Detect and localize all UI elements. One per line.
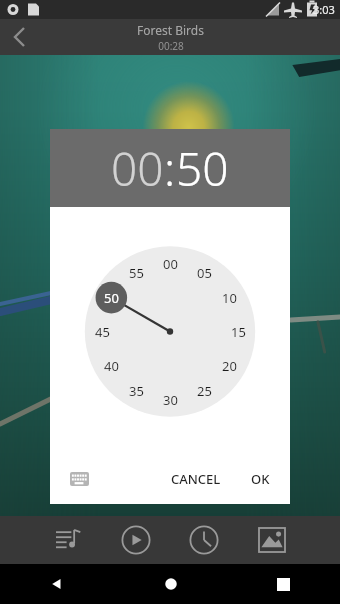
button[interactable]: 00: [50, 207, 290, 454]
staticText: OK: [251, 470, 270, 488]
button[interactable]: Playlist: [46, 518, 90, 562]
button[interactable]: 50: [176, 137, 229, 200]
staticText: 00: [111, 137, 164, 200]
staticText: 00: [163, 255, 178, 273]
staticText: 30: [163, 391, 178, 409]
staticText: 50: [104, 289, 119, 307]
button[interactable]: Back: [0, 564, 114, 604]
staticText: 35: [129, 382, 144, 400]
button[interactable]: OK: [241, 462, 280, 496]
button[interactable]: Background image: [250, 518, 294, 562]
button[interactable]: Timer: [182, 518, 226, 562]
staticText: 50: [176, 137, 229, 200]
button[interactable]: Play: [114, 518, 158, 562]
button[interactable]: Recents: [227, 564, 340, 604]
staticText: 45: [95, 323, 110, 341]
button[interactable]: 00: [111, 137, 164, 200]
staticText: 20: [222, 357, 237, 375]
button[interactable]: Switch to keyboard input: [64, 464, 94, 494]
staticText: 3:03: [313, 2, 335, 17]
staticText: :: [164, 137, 176, 200]
button[interactable]: Home: [114, 564, 227, 604]
staticText: 15: [231, 323, 246, 341]
staticText: CANCEL: [171, 470, 221, 488]
staticText: 00:28: [158, 39, 184, 53]
staticText: 25: [197, 382, 212, 400]
staticText: 05: [197, 264, 212, 282]
button[interactable]: CANCEL: [161, 462, 231, 496]
staticText: 40: [104, 357, 119, 375]
staticText: 55: [129, 264, 144, 282]
button[interactable]: Back: [0, 19, 40, 55]
staticText: 10: [222, 289, 237, 307]
staticText: Forest Birds: [137, 22, 204, 38]
